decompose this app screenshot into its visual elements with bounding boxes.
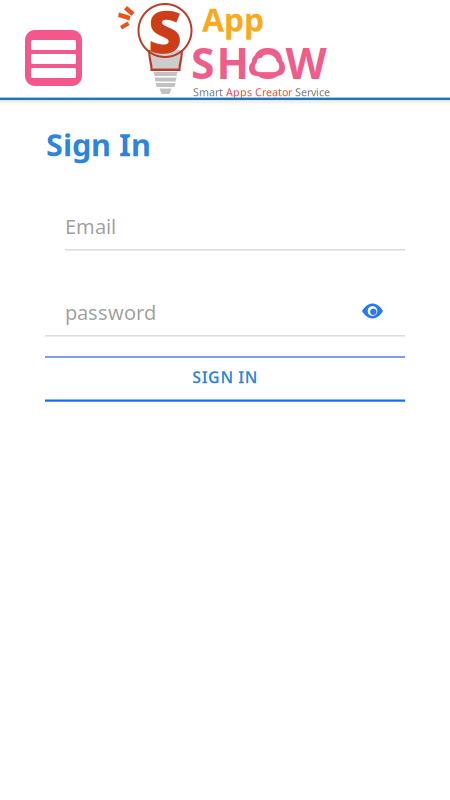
staticText: Service: [295, 85, 330, 99]
staticText: App: [202, 0, 264, 40]
staticText: Apps: [226, 85, 252, 99]
staticText: SIGN IN: [192, 366, 258, 388]
staticText: Smart: [193, 85, 223, 99]
staticText: Creator: [255, 85, 292, 99]
staticText: Sign In: [46, 124, 151, 165]
button[interactable]: Menu: [25, 30, 82, 86]
button[interactable]: Email: [65, 207, 405, 251]
staticText: S: [148, 0, 182, 69]
staticText: SHOW: [191, 34, 326, 91]
button[interactable]: SIGN IN: [45, 356, 405, 402]
button[interactable]: password: [45, 293, 405, 337]
staticText: Email: [65, 213, 116, 240]
staticText: password: [65, 299, 156, 326]
